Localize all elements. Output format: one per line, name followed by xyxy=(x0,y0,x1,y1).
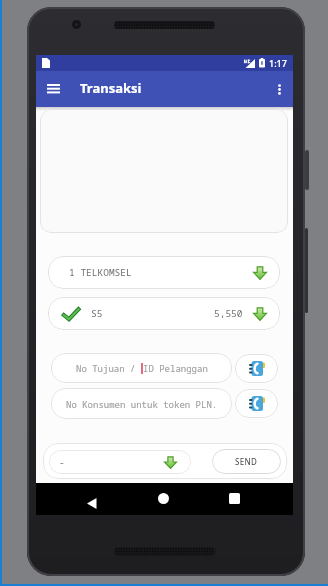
staticText: - xyxy=(59,456,65,469)
button[interactable] xyxy=(158,493,169,504)
button[interactable]: 1 TELKOMSEL xyxy=(48,256,280,289)
button[interactable] xyxy=(229,493,240,504)
button[interactable]: - xyxy=(49,450,191,474)
button[interactable]: SEND xyxy=(212,449,281,474)
staticText: Transaksi xyxy=(80,79,142,97)
staticText: No Tujuan / xyxy=(76,362,141,374)
staticText: 5,550 xyxy=(214,307,243,320)
staticText: 1:17 xyxy=(269,57,287,69)
button[interactable] xyxy=(235,389,278,418)
button[interactable] xyxy=(235,354,278,383)
staticText: ID Pelanggan xyxy=(143,362,208,374)
button[interactable]: No Konsumen untuk token PLN. xyxy=(51,388,232,419)
button[interactable]: S5 xyxy=(48,297,280,330)
staticText: S5 xyxy=(91,307,103,320)
button[interactable] xyxy=(81,492,103,514)
button[interactable]: No Tujuan / xyxy=(51,353,232,383)
button[interactable] xyxy=(41,77,65,101)
button[interactable] xyxy=(269,79,289,99)
staticText: SEND xyxy=(235,456,258,467)
staticText: No Konsumen untuk token PLN. xyxy=(66,398,218,410)
staticText: 1 TELKOMSEL xyxy=(69,266,132,279)
